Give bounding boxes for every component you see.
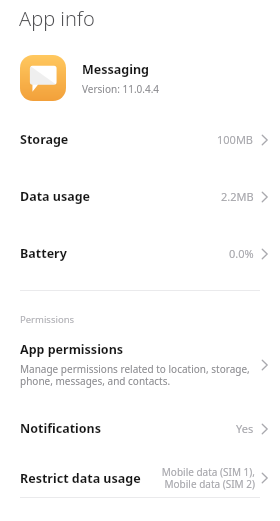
staticText: Storage bbox=[20, 131, 69, 148]
staticText: Version: 11.0.4.4 bbox=[82, 82, 160, 96]
staticText: Notifications bbox=[20, 420, 102, 437]
staticText: Battery bbox=[20, 245, 67, 262]
staticText: 0.0% bbox=[229, 246, 254, 261]
button[interactable]: Notifications bbox=[0, 408, 280, 449]
staticText: 100MB bbox=[217, 132, 254, 147]
button[interactable]: Restrict data usage bbox=[0, 459, 280, 497]
staticText: App permissions bbox=[20, 341, 124, 358]
staticText: Manage permissions related to location, … bbox=[20, 362, 250, 388]
staticText: Mobile data (SIM 1), Mobile data (SIM 2) bbox=[161, 465, 255, 491]
button[interactable]: App permissions bbox=[0, 337, 280, 392]
staticText: 2.2MB bbox=[221, 189, 254, 204]
staticText: Messaging bbox=[82, 61, 149, 78]
staticText: Restrict data usage bbox=[20, 470, 141, 487]
staticText: Permissions bbox=[20, 313, 75, 326]
staticText: Yes bbox=[236, 421, 254, 436]
button[interactable]: Battery bbox=[0, 233, 280, 274]
button[interactable]: Data usage bbox=[0, 176, 280, 217]
button[interactable]: Storage bbox=[0, 119, 280, 160]
staticText: App info bbox=[19, 5, 95, 32]
staticText: Data usage bbox=[20, 188, 91, 205]
